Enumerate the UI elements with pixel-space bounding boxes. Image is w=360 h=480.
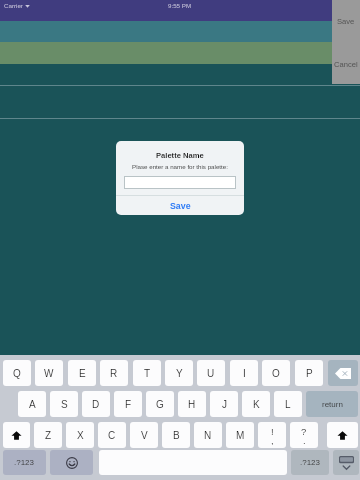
button[interactable]: P (295, 360, 323, 386)
staticText: , (271, 435, 274, 445)
button[interactable]: T (133, 360, 161, 386)
button[interactable]: E (68, 360, 96, 386)
staticText: W (44, 368, 54, 379)
staticText: I (243, 368, 246, 379)
staticText: X (77, 430, 84, 441)
staticText: P (306, 368, 313, 379)
staticText: H (188, 399, 196, 410)
button[interactable]: Z (34, 422, 62, 448)
staticText: Save (337, 17, 355, 25)
staticText: 9:55 PM (168, 2, 192, 9)
button[interactable]: return (306, 391, 358, 417)
button[interactable]: R (100, 360, 128, 386)
staticText: J (222, 399, 227, 410)
staticText: N (204, 430, 212, 441)
staticText: R (110, 368, 118, 379)
staticText: S (61, 399, 68, 410)
button[interactable]: U (197, 360, 225, 386)
button[interactable]: V (130, 422, 158, 448)
button[interactable]: Emoji (50, 450, 93, 475)
staticText: A (29, 399, 36, 410)
button[interactable]: Cancel (332, 56, 360, 72)
staticText: Plase enter a name for this palette: (132, 163, 228, 170)
staticText: F (125, 399, 132, 410)
button[interactable]: M (226, 422, 254, 448)
button[interactable]: .?123 (3, 450, 46, 475)
staticText: Carrier (4, 2, 23, 9)
staticText: .?123 (14, 458, 35, 467)
staticText: .?123 (300, 458, 321, 467)
staticText: Save (170, 201, 191, 211)
button[interactable]: I (230, 360, 258, 386)
button[interactable]: W (35, 360, 63, 386)
staticText: U (207, 368, 215, 379)
button[interactable]: Q (3, 360, 31, 386)
button[interactable]: Hide keyboard (333, 450, 359, 475)
button[interactable]: Backspace (328, 360, 358, 386)
staticText: K (253, 399, 260, 410)
button[interactable]: Shift (3, 422, 30, 448)
staticText: T (144, 368, 151, 379)
staticText: C (108, 430, 116, 441)
button[interactable]: L (274, 391, 302, 417)
button[interactable]: O (262, 360, 290, 386)
button[interactable]: ? (290, 422, 318, 448)
button[interactable]: Y (165, 360, 193, 386)
button[interactable]: G (146, 391, 174, 417)
staticText: Cancel (334, 60, 358, 68)
button[interactable]: S (50, 391, 78, 417)
staticText: L (285, 399, 291, 410)
button[interactable]: F (114, 391, 142, 417)
button[interactable]: D (82, 391, 110, 417)
staticText: return (322, 400, 343, 409)
staticText: Y (176, 368, 183, 379)
staticText: M (236, 430, 245, 441)
staticText: O (272, 368, 280, 379)
staticText: B (173, 430, 180, 441)
button[interactable]: Save (332, 13, 360, 29)
staticText: D (92, 399, 100, 410)
staticText: Z (45, 430, 52, 441)
staticText: Palette Name (156, 151, 204, 159)
staticText: . (303, 435, 306, 445)
staticText: Q (13, 368, 21, 379)
button[interactable]: N (194, 422, 222, 448)
button[interactable]: H (178, 391, 206, 417)
button[interactable]: X (66, 422, 94, 448)
staticText: E (79, 368, 86, 379)
staticText: ? (301, 426, 307, 436)
button[interactable]: K (242, 391, 270, 417)
staticText: ! (271, 426, 274, 436)
button[interactable]: B (162, 422, 190, 448)
button[interactable]: ! (258, 422, 286, 448)
button[interactable]: .?123 (291, 450, 329, 475)
button[interactable]: J (210, 391, 238, 417)
button[interactable]: A (18, 391, 46, 417)
staticText: V (141, 430, 148, 441)
staticText: G (156, 399, 164, 410)
button[interactable]: Shift (327, 422, 358, 448)
button[interactable]: C (98, 422, 126, 448)
button[interactable]: Save (116, 196, 244, 215)
